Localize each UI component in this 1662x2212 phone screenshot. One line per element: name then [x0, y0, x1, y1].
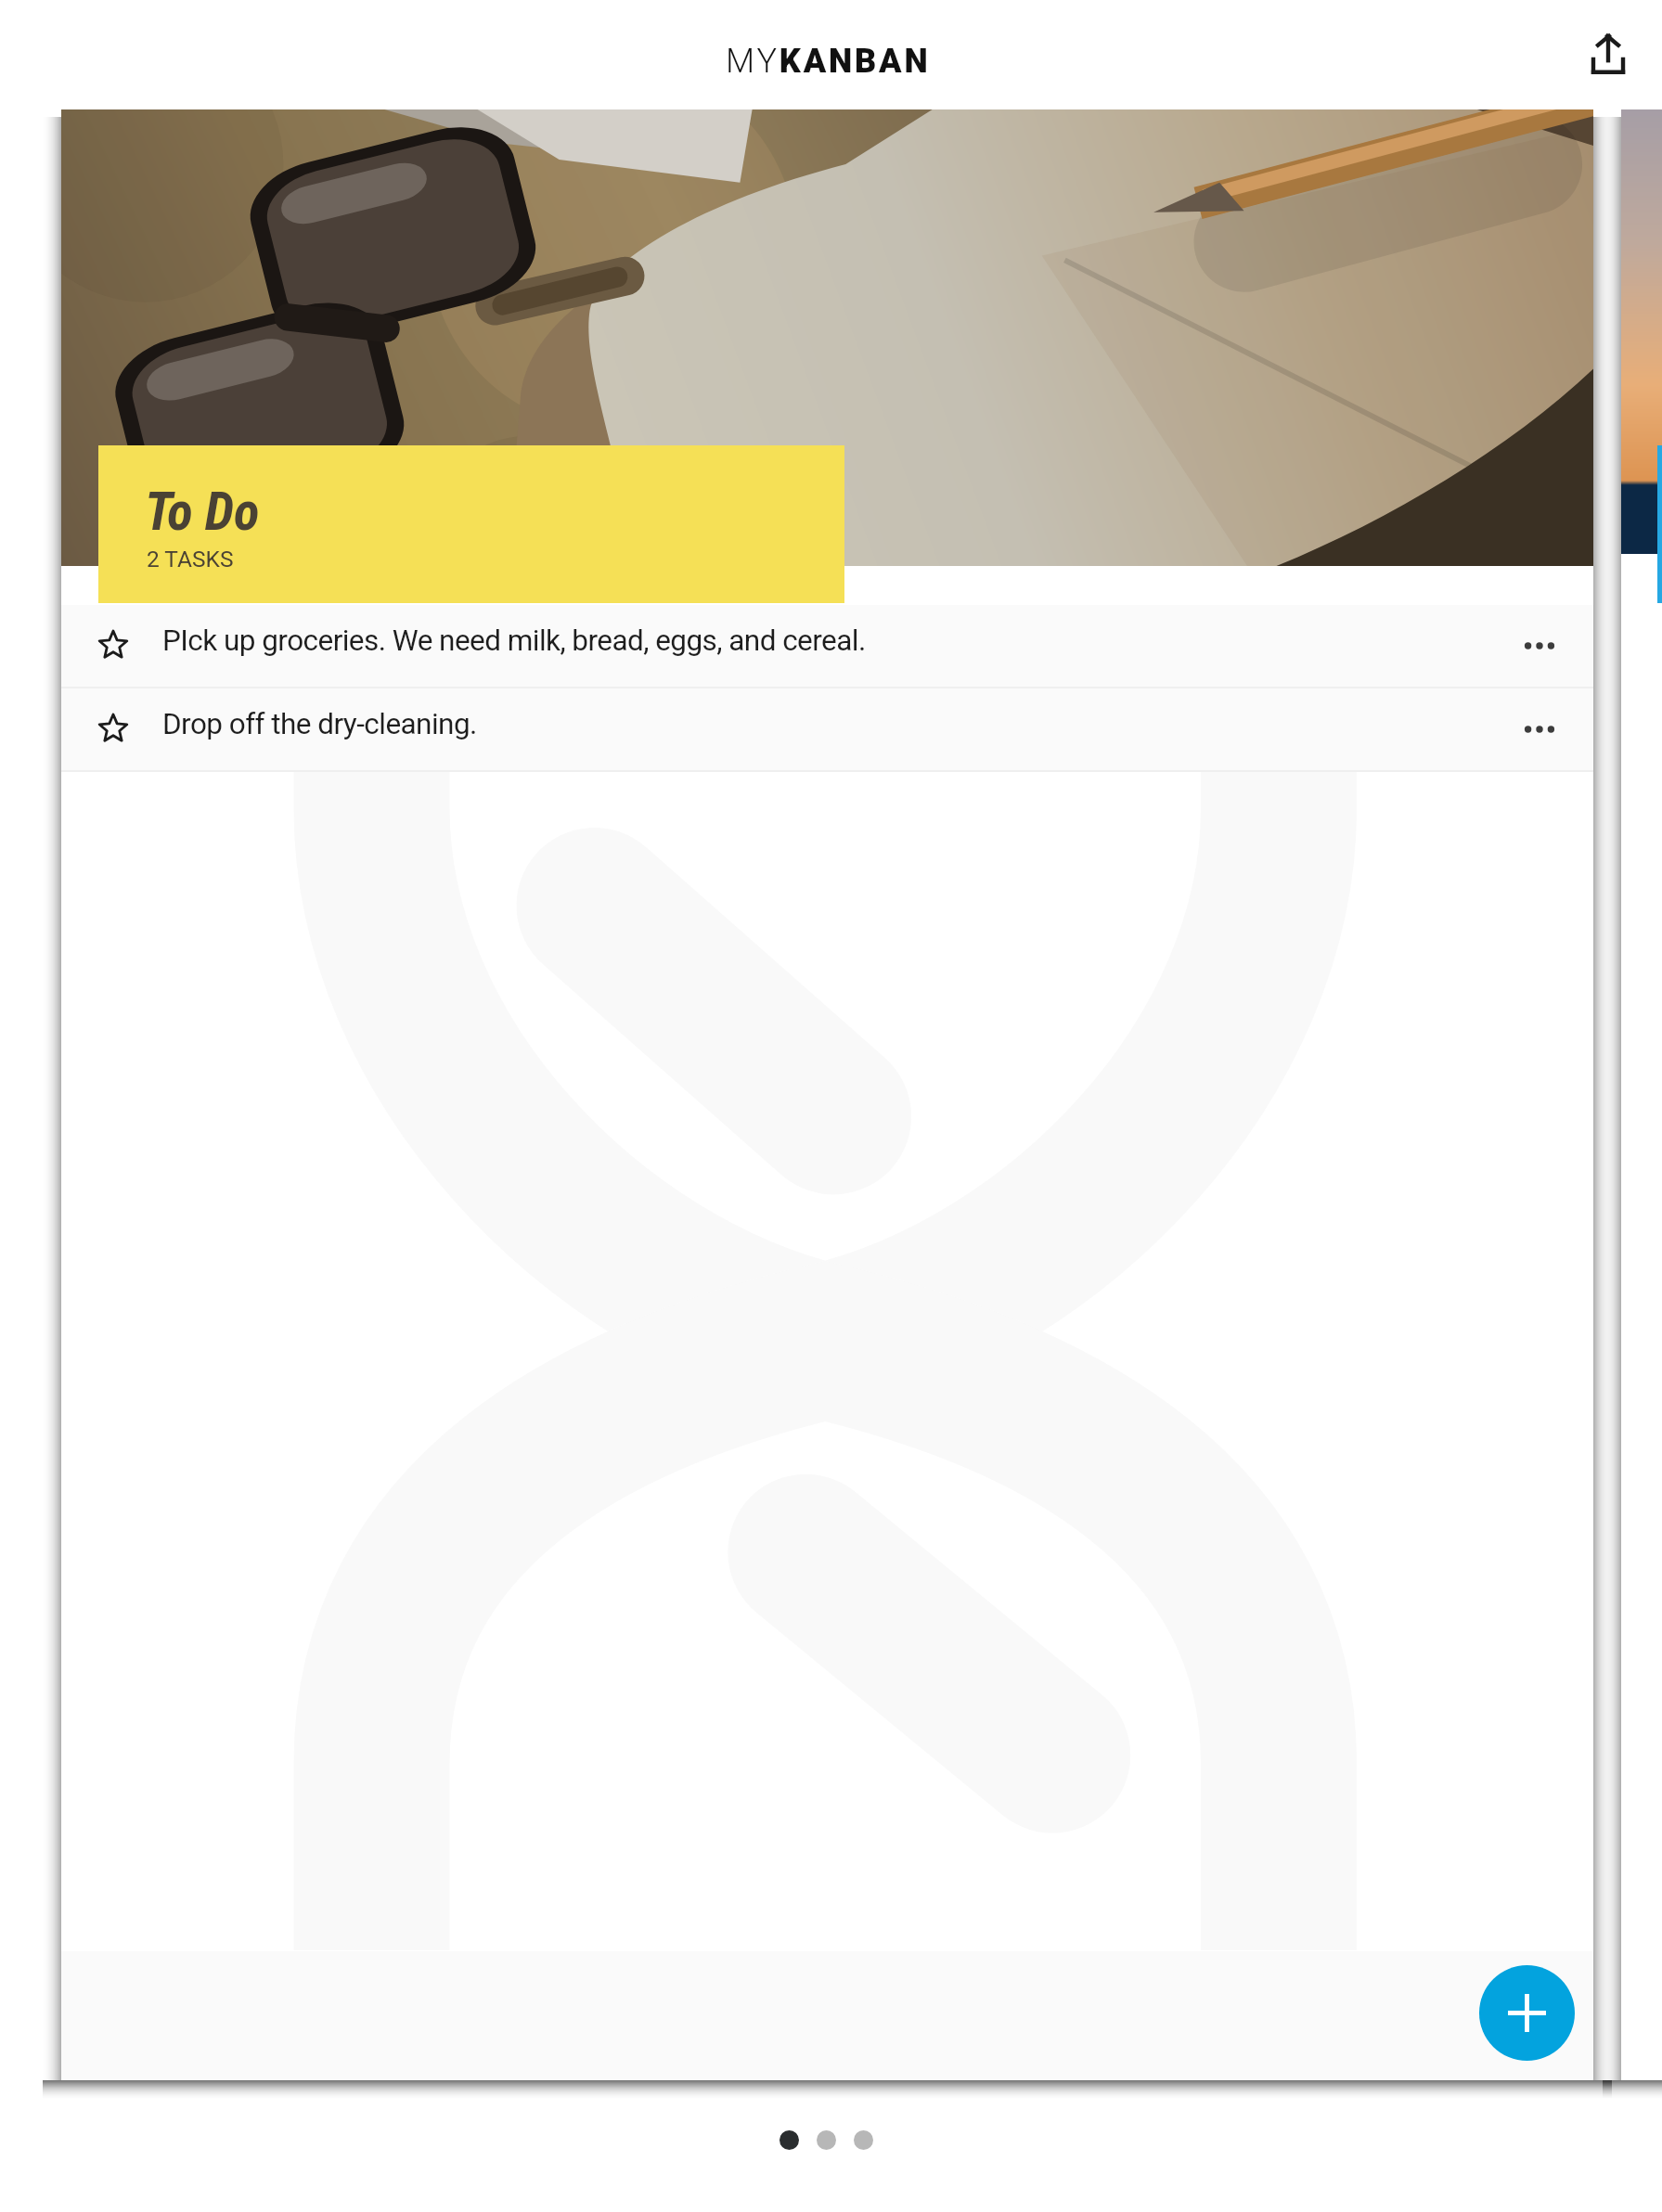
button[interactable]: Share	[1564, 10, 1653, 99]
button[interactable]: Page 3	[854, 2130, 873, 2150]
button[interactable]: More options	[1486, 688, 1593, 770]
staticText: Drop off the dry-cleaning.	[162, 707, 1483, 741]
button[interactable]: Star task	[61, 605, 1593, 687]
button[interactable]: Page 2	[817, 2130, 836, 2150]
staticText: PIck up groceries. We need milk, bread, …	[162, 624, 1483, 658]
button[interactable]: More options	[1486, 605, 1593, 687]
staticText: To Do	[145, 481, 260, 543]
button[interactable]: Page 1, To Do	[779, 2130, 799, 2150]
staticText: 2 TASKS	[147, 546, 234, 572]
button[interactable]: Star task	[61, 688, 165, 770]
button[interactable]: Star task	[61, 605, 165, 687]
button[interactable]: Add task	[1479, 1965, 1575, 2061]
button[interactable]: To Do	[98, 445, 844, 603]
staticText: MYKANBAN	[726, 42, 931, 81]
button[interactable]: Star task	[61, 688, 1593, 770]
